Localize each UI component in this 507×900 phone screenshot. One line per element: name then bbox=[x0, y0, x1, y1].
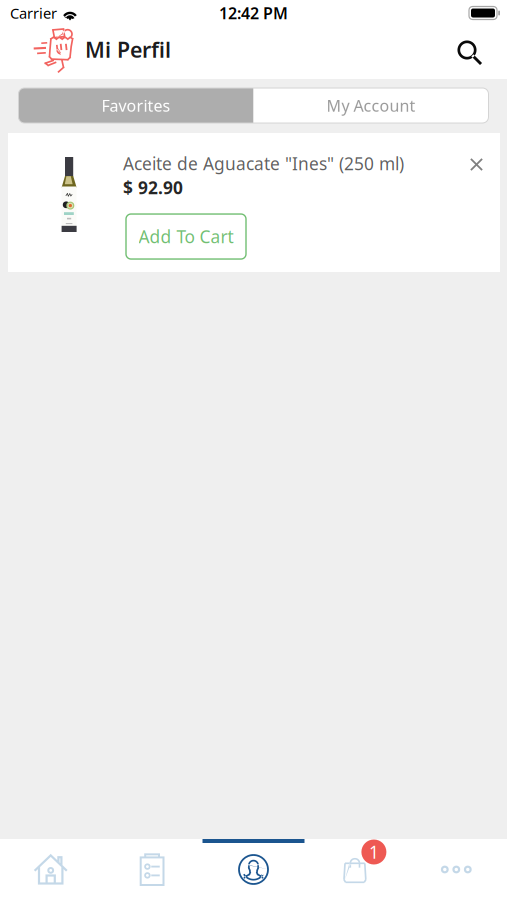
staticText: My Account bbox=[326, 95, 415, 116]
button[interactable]: Orders bbox=[101, 839, 203, 900]
staticText: Aceite de Aguacate "Ines" (250 ml) bbox=[123, 152, 404, 175]
staticText: Add To Cart bbox=[138, 225, 233, 248]
staticText: 1 bbox=[369, 840, 379, 863]
staticText: $ 92.90 bbox=[123, 176, 183, 199]
button[interactable]: Favorites bbox=[18, 88, 253, 123]
staticText: Favorites bbox=[101, 95, 170, 116]
button[interactable]: Home bbox=[0, 839, 101, 900]
button[interactable]: Cart bbox=[304, 839, 406, 900]
button[interactable]: Profile bbox=[203, 839, 304, 900]
staticText: Carrier bbox=[10, 3, 57, 23]
button[interactable]: More bbox=[406, 839, 507, 900]
button[interactable]: Remove bbox=[463, 151, 490, 178]
button[interactable]: Add To Cart bbox=[126, 214, 246, 259]
staticText: Mi Perfil bbox=[85, 35, 171, 64]
button[interactable]: My Account bbox=[253, 88, 488, 123]
button[interactable]: Search bbox=[457, 40, 507, 65]
staticText: 12:42 PM bbox=[219, 2, 288, 24]
